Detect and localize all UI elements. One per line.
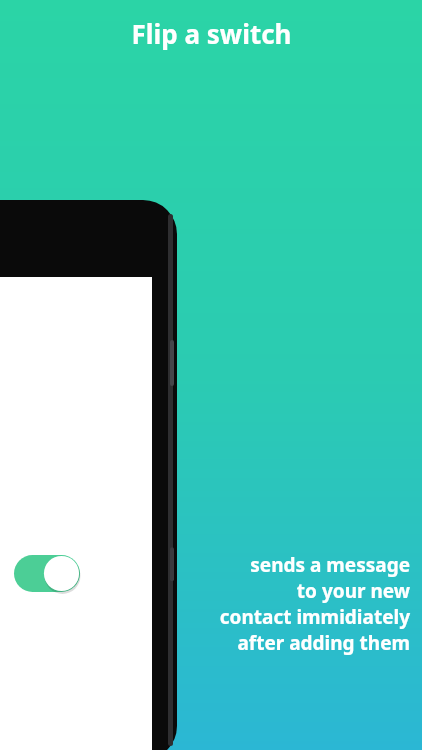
staticText: after adding them — [237, 630, 410, 656]
button[interactable]: Auto message toggle, on — [14, 555, 80, 592]
button[interactable]: sends a message — [178, 552, 410, 717]
button[interactable]: Flip a switch — [131, 16, 292, 51]
staticText: to your new — [296, 578, 410, 604]
staticText: sends a message — [250, 552, 410, 578]
staticText: contact immidiately — [219, 604, 410, 630]
